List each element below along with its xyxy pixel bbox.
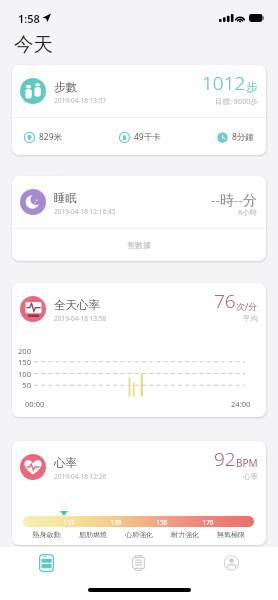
staticText: 8分鐘: [232, 131, 254, 143]
button[interactable]: 步數: [12, 65, 266, 155]
staticText: 1:58: [18, 11, 40, 26]
staticText: 00:00: [25, 399, 45, 409]
staticText: 49千卡: [134, 131, 161, 143]
staticText: 200: [12, 346, 31, 356]
staticText: 熱身啟動: [23, 530, 70, 539]
staticText: 心率: [54, 456, 77, 470]
staticText: 今天: [14, 32, 53, 57]
staticText: 平均: [243, 314, 258, 323]
staticText: 1012: [202, 70, 246, 96]
staticText: 步: [246, 80, 258, 94]
staticText: 50: [12, 380, 31, 390]
staticText: 睡眠: [54, 191, 77, 205]
button[interactable]: Device: [0, 547, 92, 578]
staticText: 2019-04-18 13:57: [54, 96, 107, 105]
staticText: 100: [12, 369, 31, 379]
staticText: 步數: [54, 80, 77, 94]
button[interactable]: 睡眠: [12, 176, 266, 261]
staticText: 2019-04-18 13:58: [54, 314, 107, 323]
staticText: 136: [107, 518, 125, 527]
staticText: 無氧極限: [208, 530, 254, 539]
staticText: 156: [153, 518, 171, 527]
staticText: 76: [214, 288, 236, 314]
staticText: 無數據: [127, 240, 151, 250]
staticText: 目標: 8000步: [215, 96, 258, 106]
button[interactable]: Profile: [185, 547, 278, 578]
staticText: 全天心率: [54, 298, 100, 312]
button[interactable]: 心率: [12, 441, 266, 545]
staticText: 8小時: [238, 207, 258, 217]
staticText: 150: [12, 357, 31, 367]
staticText: 2019-04-18 12:16:45: [54, 207, 116, 216]
staticText: 92: [214, 446, 236, 472]
staticText: --時--分: [211, 190, 258, 209]
staticText: 心肺強化: [116, 530, 162, 539]
staticText: 176: [199, 518, 217, 527]
staticText: 脂肪燃燒: [70, 530, 116, 539]
staticText: 829米: [39, 131, 63, 143]
staticText: BPM: [236, 456, 258, 470]
staticText: 117: [60, 518, 78, 527]
button[interactable]: 全天心率: [12, 283, 266, 417]
button[interactable]: Records: [92, 547, 185, 578]
staticText: 2019-04-18 12:26: [54, 472, 107, 481]
staticText: 24:00: [231, 399, 251, 409]
staticText: 次/分: [236, 300, 258, 312]
staticText: 心率: [243, 472, 258, 481]
staticText: 耐力強化: [162, 530, 208, 539]
